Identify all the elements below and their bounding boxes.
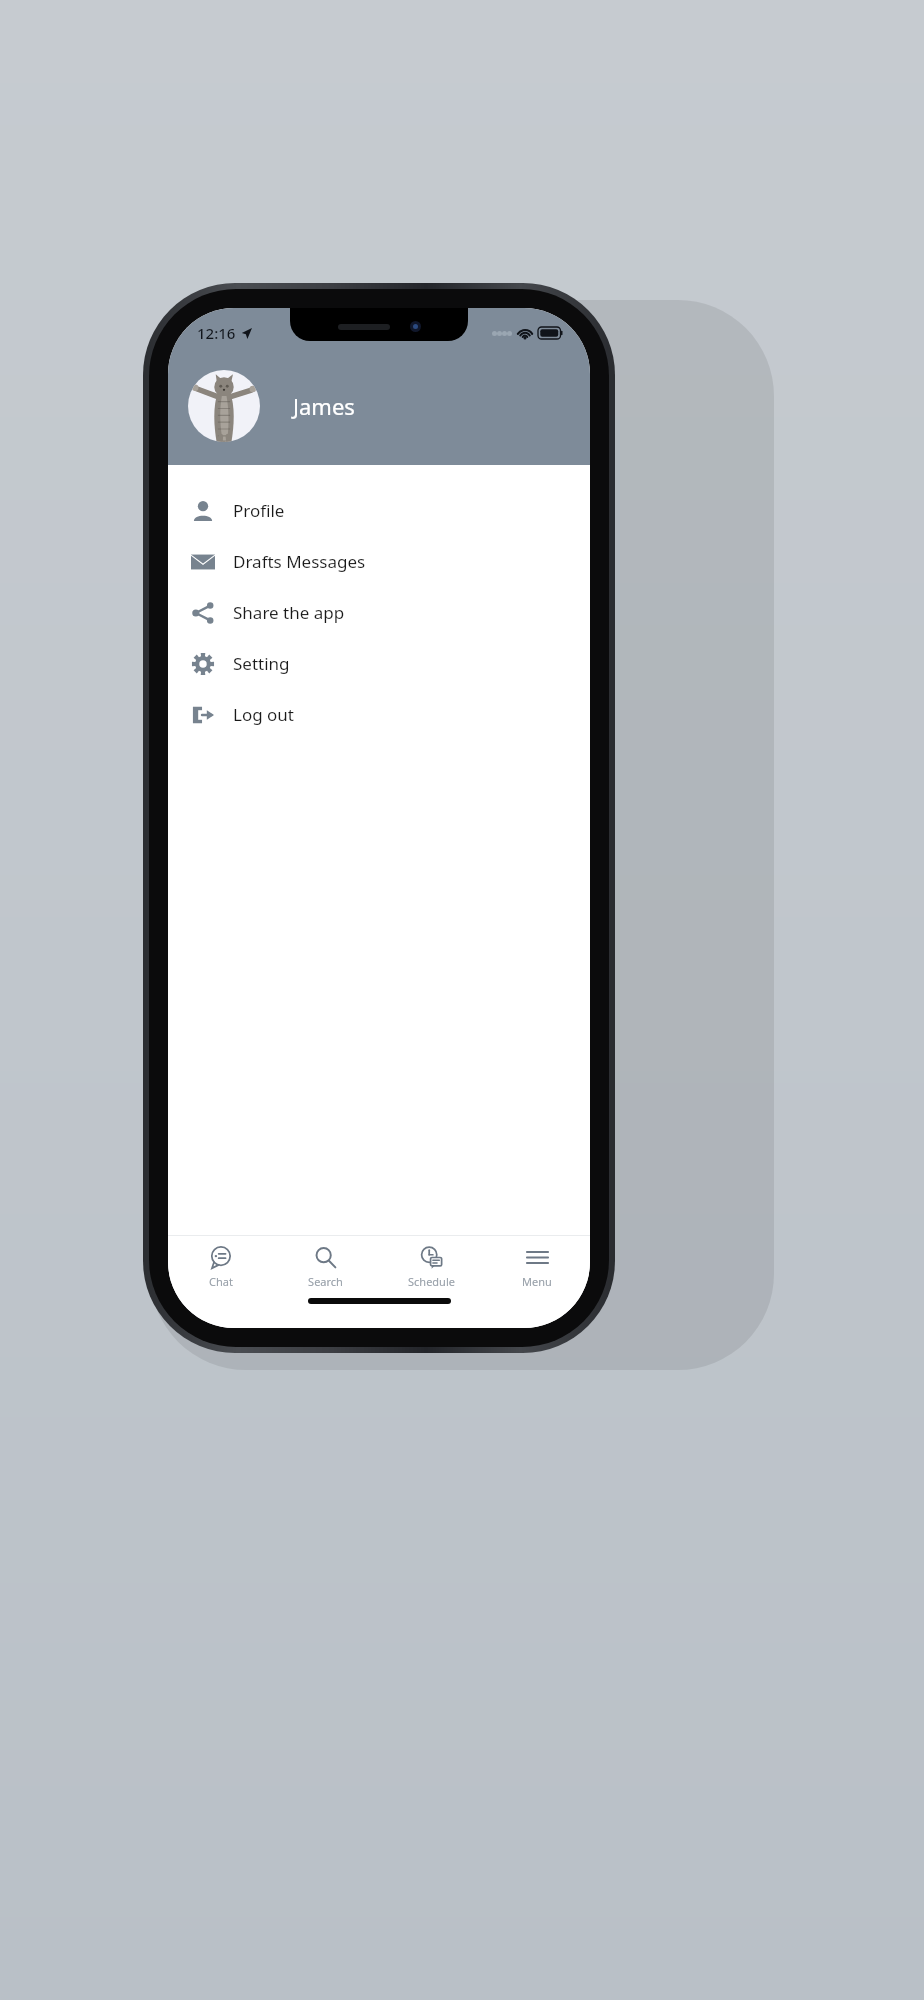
button[interactable]: Profile — [168, 485, 590, 536]
staticText: Schedule — [408, 1274, 455, 1289]
staticText: Log out — [233, 703, 294, 726]
button[interactable]: Menu — [484, 1236, 590, 1298]
button[interactable]: Setting — [168, 638, 590, 689]
button[interactable]: Search — [273, 1236, 378, 1298]
button[interactable] — [188, 370, 260, 442]
staticText: James — [293, 391, 355, 421]
staticText: Profile — [233, 499, 285, 522]
button[interactable]: Log out — [168, 689, 590, 740]
staticText: Setting — [233, 652, 290, 675]
button[interactable]: Share the app — [168, 587, 590, 638]
staticText: Chat — [209, 1274, 233, 1289]
button[interactable]: Drafts Messages — [168, 536, 590, 587]
staticText: Search — [308, 1274, 343, 1289]
button[interactable]: Chat — [168, 1236, 273, 1298]
staticText: Menu — [522, 1274, 552, 1289]
staticText: Share the app — [233, 601, 345, 624]
staticText: Drafts Messages — [233, 550, 366, 573]
staticText: 12:16 — [197, 323, 236, 343]
button[interactable]: Schedule — [378, 1236, 484, 1298]
